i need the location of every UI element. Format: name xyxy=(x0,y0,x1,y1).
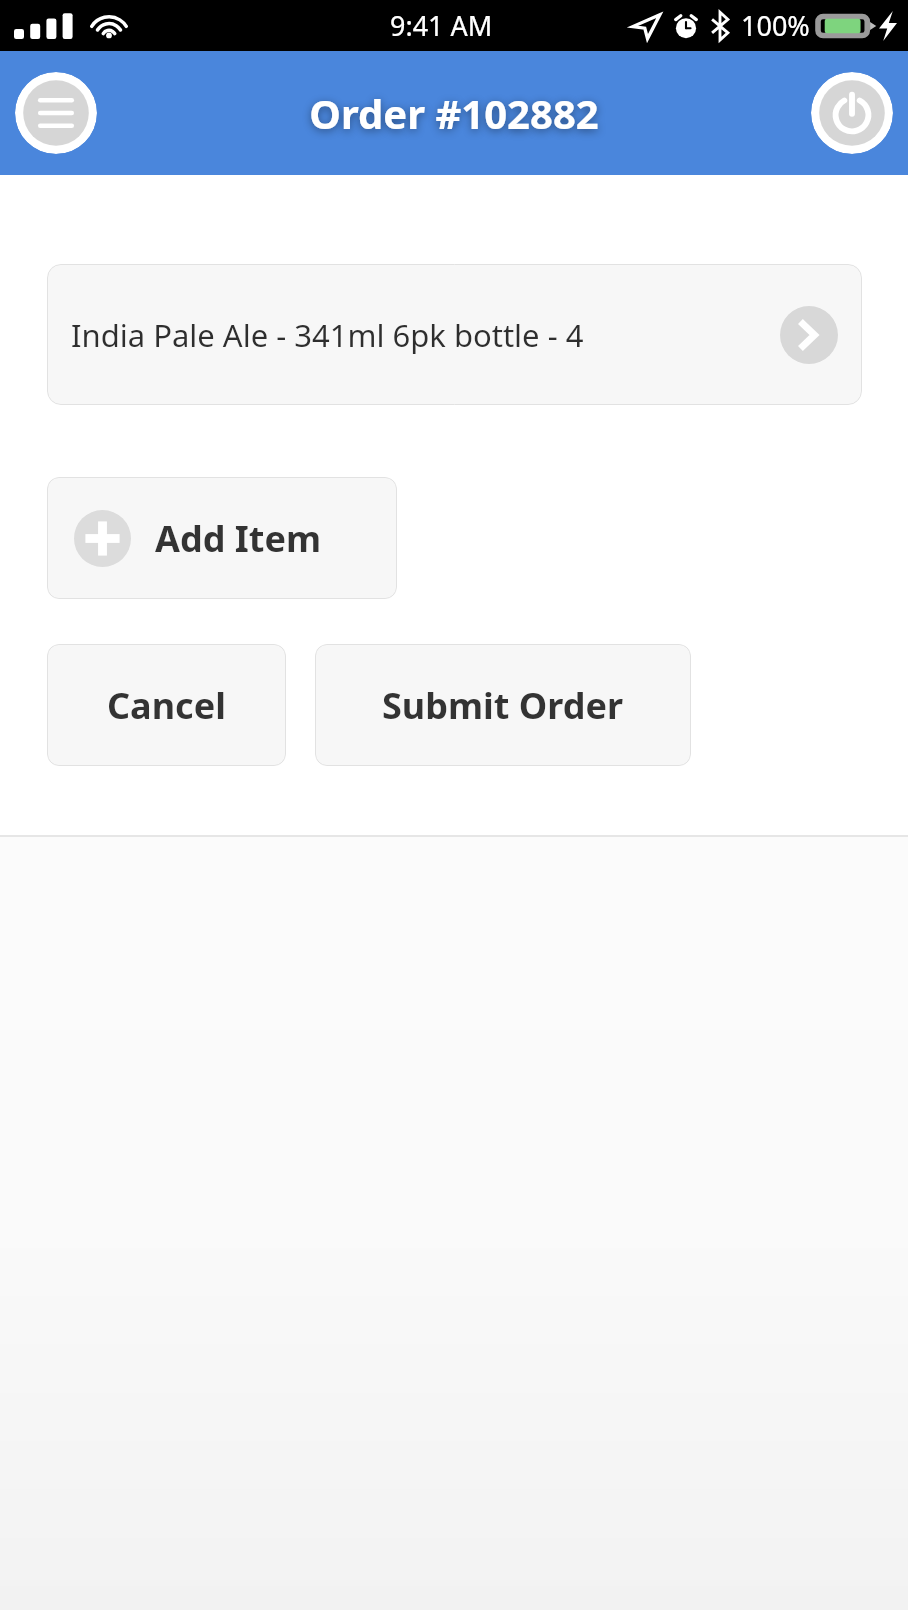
button[interactable]: Submit Order xyxy=(315,644,691,766)
button[interactable]: India Pale Ale - 341ml 6pk bottle - 4 xyxy=(47,264,862,405)
staticText: Order #102882 xyxy=(309,86,599,140)
button[interactable]: Menu xyxy=(15,72,97,154)
staticText: Add Item xyxy=(155,514,321,563)
staticText: India Pale Ale - 341ml 6pk bottle - 4 xyxy=(71,314,780,356)
button[interactable]: Power xyxy=(811,72,893,154)
staticText: Submit Order xyxy=(382,681,624,730)
button[interactable]: Add Item xyxy=(47,477,397,599)
button[interactable]: Cancel xyxy=(47,644,286,766)
staticText: 9:41 AM xyxy=(390,7,493,44)
staticText: 100% xyxy=(741,7,810,44)
staticText: Cancel xyxy=(107,681,226,730)
